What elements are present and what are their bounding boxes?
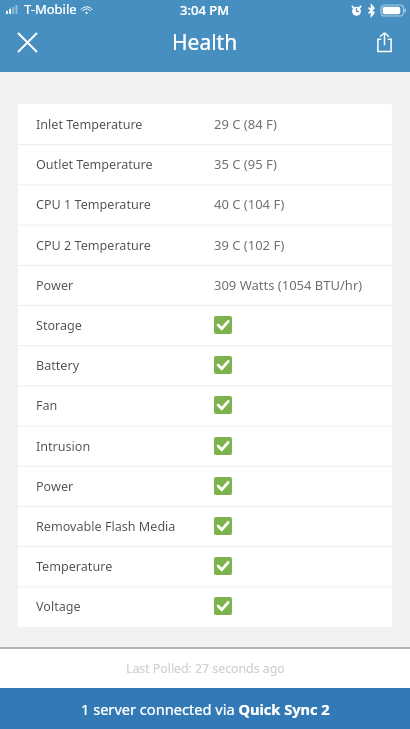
staticText: 3:04 PM (180, 1, 230, 19)
staticText: 40 C (104 F) (214, 195, 285, 213)
staticText: Voltage (36, 598, 81, 615)
staticText: Health (172, 28, 238, 57)
staticText: Intrusion (36, 438, 91, 455)
staticText: Temperature (36, 558, 113, 575)
button[interactable]: Close (8, 23, 46, 61)
button[interactable]: 1 server connected via Quick Sync 2 (0, 688, 410, 729)
staticText: CPU 1 Temperature (36, 196, 151, 213)
button[interactable]: Intrusion (18, 426, 392, 466)
staticText: 1 server connected via Quick Sync 2 (81, 699, 330, 719)
button[interactable]: Fan (18, 385, 392, 425)
staticText: Storage (36, 317, 82, 334)
button[interactable]: CPU 2 Temperature (18, 225, 392, 265)
staticText: Fan (36, 397, 58, 414)
button[interactable]: Outlet Temperature (18, 144, 392, 184)
staticText: Last Polled: 27 seconds ago (126, 660, 285, 677)
staticText: 29 C (84 F) (214, 115, 277, 133)
staticText: Outlet Temperature (36, 156, 153, 173)
staticText: Power (36, 277, 74, 294)
button[interactable]: Share (365, 23, 403, 61)
button[interactable]: CPU 1 Temperature (18, 184, 392, 224)
staticText: Battery (36, 357, 80, 374)
staticText: Power (36, 478, 74, 495)
button[interactable]: Storage (18, 305, 392, 345)
staticText: Removable Flash Media (36, 518, 176, 535)
staticText: Inlet Temperature (36, 116, 143, 133)
button[interactable]: Power (18, 466, 392, 506)
staticText: CPU 2 Temperature (36, 237, 151, 254)
button[interactable]: Temperature (18, 546, 392, 586)
button[interactable]: Battery (18, 345, 392, 385)
button[interactable]: Power (18, 265, 392, 305)
button[interactable]: Voltage (18, 586, 392, 626)
button[interactable]: Removable Flash Media (18, 506, 392, 546)
staticText: T-Mobile (24, 0, 77, 18)
staticText: 309 Watts (1054 BTU/hr) (214, 276, 363, 294)
staticText: 39 C (102 F) (214, 236, 285, 254)
staticText: 35 C (95 F) (214, 155, 277, 173)
button[interactable]: Inlet Temperature (18, 104, 392, 144)
